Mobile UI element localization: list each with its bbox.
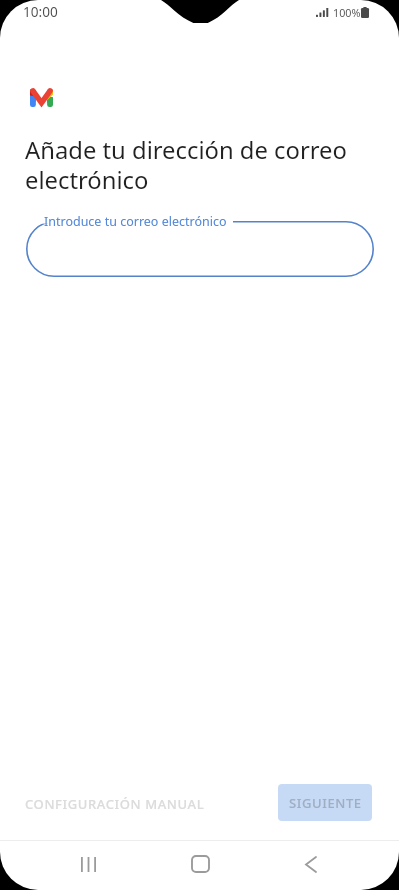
staticText: Añade tu dirección de correo electrónico [25,134,355,196]
button[interactable]: SIGUIENTE [278,784,372,821]
staticText: 100% [333,5,361,20]
staticText: CONFIGURACIÓN MANUAL [25,795,205,813]
staticText: 10:00 [23,2,58,21]
staticText: Introduce tu correo electrónico [44,213,227,230]
staticText: SIGUIENTE [289,794,362,812]
button[interactable]: Recents [66,842,110,886]
button[interactable]: Home [178,842,222,886]
button[interactable]: CONFIGURACIÓN MANUAL [17,786,213,822]
button[interactable]: Back [289,842,333,886]
